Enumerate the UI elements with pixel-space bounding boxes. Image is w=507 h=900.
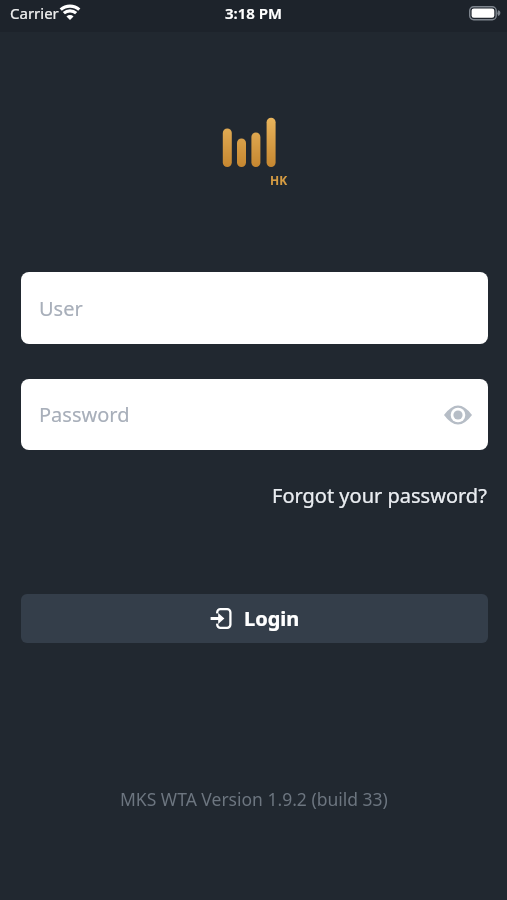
staticText: User	[39, 295, 83, 322]
button[interactable]	[444, 405, 472, 425]
staticText: Login	[244, 605, 300, 632]
button[interactable]: Login	[21, 594, 488, 643]
staticText: Carrier	[10, 3, 59, 23]
staticText: HK	[270, 172, 288, 188]
button[interactable]: User	[21, 272, 488, 344]
button[interactable]: Forgot your password?	[272, 482, 487, 509]
staticText: MKS WTA Version 1.9.2 (build 33)	[120, 787, 388, 811]
button[interactable]: Password	[21, 379, 488, 450]
staticText: Password	[39, 401, 130, 428]
staticText: 3:18 PM	[225, 3, 282, 23]
